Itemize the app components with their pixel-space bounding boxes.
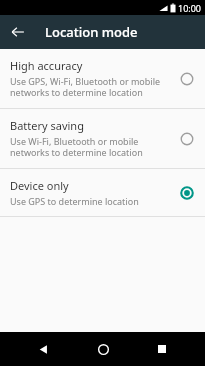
button[interactable]: High accuracy: [0, 49, 205, 108]
button[interactable]: Home: [86, 332, 120, 366]
button[interactable]: Back: [26, 332, 60, 366]
staticText: Location mode: [45, 23, 138, 41]
staticText: Device only: [10, 178, 69, 193]
button[interactable]: Recent apps: [145, 332, 179, 366]
button[interactable]: Back: [6, 20, 30, 44]
staticText: Use GPS to determine location: [10, 195, 139, 207]
button[interactable]: Battery saving: [0, 109, 205, 168]
staticText: Use Wi-Fi, Bluetooth or mobile networks …: [10, 135, 143, 159]
staticText: Use GPS, Wi-Fi, Bluetooth or mobile netw…: [10, 75, 161, 99]
staticText: Battery saving: [10, 118, 84, 133]
button[interactable]: Device only: [0, 169, 205, 216]
staticText: 10:00: [178, 2, 202, 14]
staticText: High accuracy: [10, 58, 83, 73]
